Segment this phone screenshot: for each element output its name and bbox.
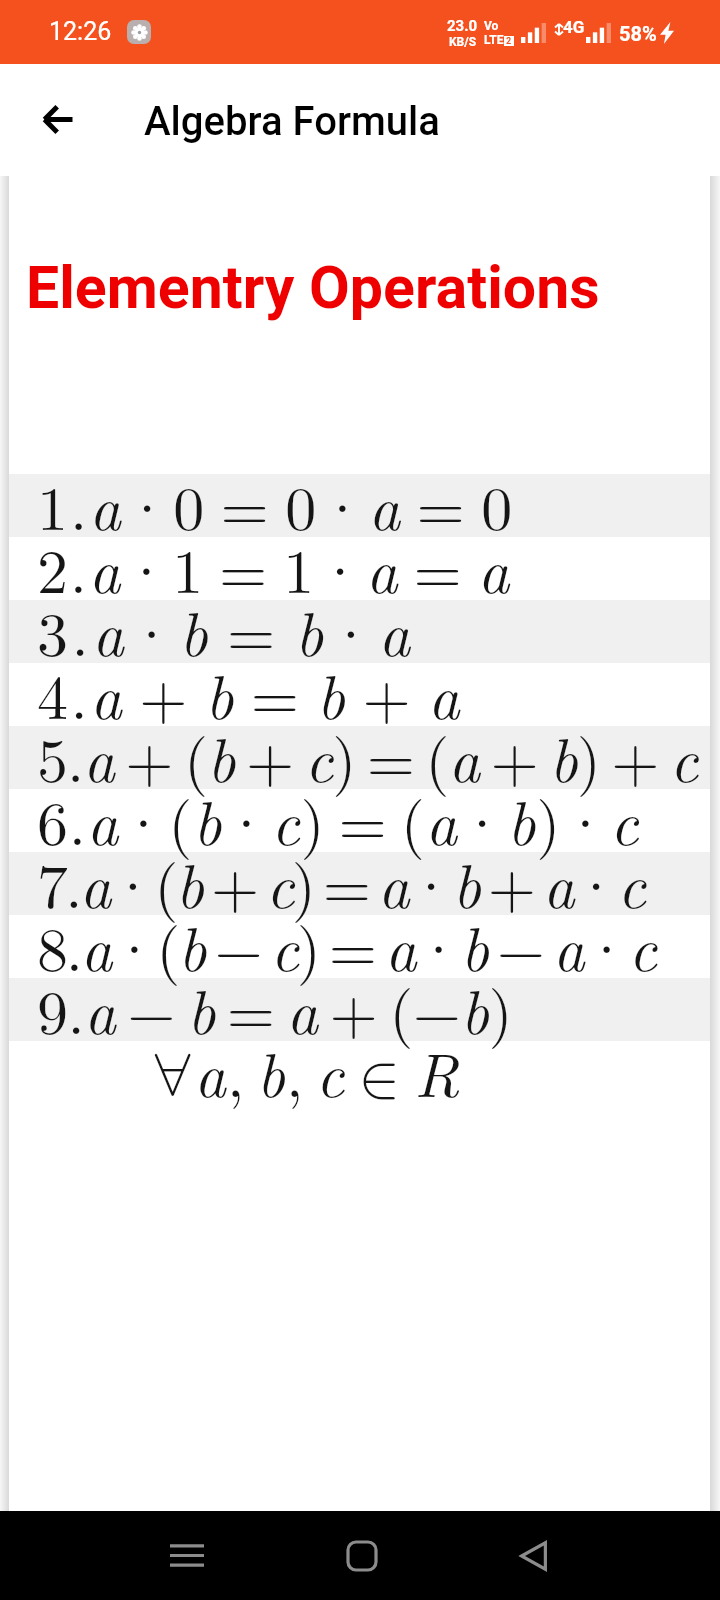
button[interactable] [9, 852, 710, 915]
button[interactable] [9, 537, 710, 600]
staticText: 2 [506, 36, 512, 46]
staticText: 12:26 [49, 17, 112, 46]
staticText: 5.a + (b + c) = (a + b) + c [37, 712, 698, 800]
button[interactable]: Back [496, 1511, 570, 1600]
staticText: 58% [619, 22, 657, 45]
staticText: Algebra Formula [144, 98, 440, 145]
staticText: Elementry Operations [26, 253, 600, 322]
button[interactable]: Back [26, 89, 88, 151]
staticText: Vo [484, 19, 499, 33]
staticText: 4.a + b = b + a [37, 649, 463, 737]
button[interactable]: Home [325, 1511, 399, 1600]
staticText: KB/S [449, 35, 477, 49]
button[interactable] [9, 915, 710, 978]
staticText: 4G [563, 17, 585, 37]
staticText: ∀a, b, c ∈ R [152, 1027, 461, 1115]
button[interactable]: Recent apps [150, 1511, 224, 1600]
button[interactable] [9, 978, 710, 1041]
staticText: 3.a·b = b·a [37, 586, 414, 674]
staticText: 9.a − b = a + (−b) [37, 964, 513, 1052]
button[interactable] [9, 600, 710, 663]
staticText: 8.a·(b − c) = a·b − a·c [37, 901, 655, 989]
staticText: LTE [484, 33, 504, 47]
staticText: 2.a·1 = 1·a = a [37, 523, 512, 611]
button[interactable] [9, 726, 710, 789]
staticText: 6.a·(b·c) = (a·b)·c [37, 775, 640, 863]
staticText: 1.a·0 = 0·a = 0 [37, 460, 515, 548]
button[interactable] [9, 474, 710, 537]
staticText: 23.0 [447, 17, 478, 35]
staticText: 7.a·(b + c) = a·b + a·c [37, 838, 644, 926]
button[interactable] [9, 663, 710, 726]
button[interactable] [9, 789, 710, 852]
